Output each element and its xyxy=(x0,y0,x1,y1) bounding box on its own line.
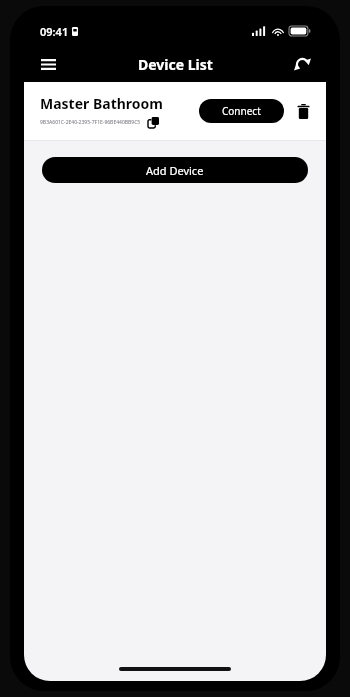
button[interactable]: Menu xyxy=(32,48,64,80)
staticText: Master Bathroom xyxy=(40,94,163,113)
button[interactable]: Delete device xyxy=(290,98,316,124)
button[interactable]: Master Bathroom xyxy=(24,82,326,140)
button[interactable]: Connect xyxy=(199,99,284,123)
button[interactable]: Refresh xyxy=(286,48,318,80)
staticText: Connect xyxy=(222,104,261,118)
button[interactable]: Copy device id xyxy=(146,115,160,129)
staticText: Add Device xyxy=(146,163,204,178)
staticText: 9B3A601C-2E40-2395-7F1E-96BE440BB9C5 xyxy=(40,119,141,126)
staticText: 09:41 xyxy=(40,24,69,39)
staticText: Device List xyxy=(138,55,213,74)
button[interactable]: Add Device xyxy=(42,157,308,183)
